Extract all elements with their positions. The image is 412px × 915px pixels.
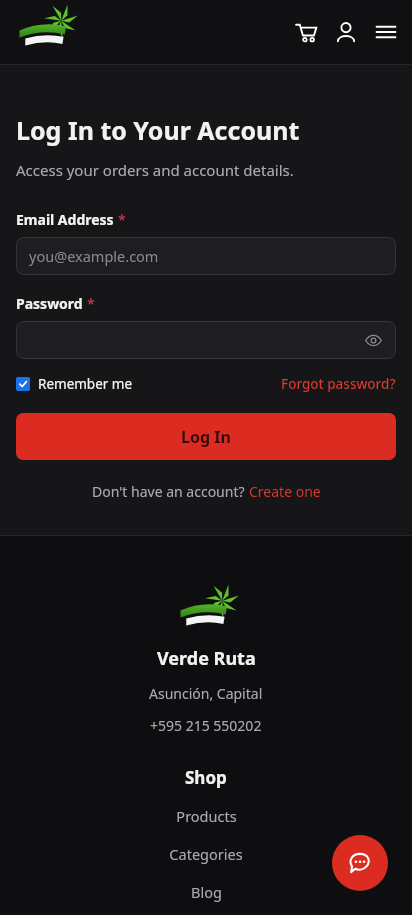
staticText: Don't have an account?	[92, 482, 249, 501]
staticText: Remember me	[38, 375, 133, 393]
staticText: *	[87, 294, 95, 313]
button[interactable]: you@example.com	[16, 237, 396, 275]
staticText: *	[118, 210, 126, 229]
staticText: Access your orders and account details.	[16, 160, 294, 180]
button[interactable]: Verde Ruta	[177, 592, 235, 632]
staticText: Password	[16, 294, 83, 313]
button[interactable]: Forgot password?	[281, 375, 396, 393]
staticText: Shop	[185, 766, 227, 789]
staticText: Forgot password?	[281, 375, 396, 393]
button[interactable]: Remember me	[16, 375, 133, 393]
button[interactable]: Menu	[372, 18, 400, 46]
staticText: Asunción, Capital	[149, 684, 263, 703]
button[interactable]: Account	[332, 18, 360, 46]
staticText: Products	[176, 806, 237, 826]
staticText: Email Address	[16, 210, 114, 229]
button[interactable]: Categories	[0, 844, 412, 864]
staticText: Create one	[249, 482, 321, 501]
button[interactable]: Open chat	[332, 835, 388, 891]
staticText: Log In to Your Account	[16, 113, 300, 147]
staticText: Log In	[181, 426, 231, 448]
staticText: +595 215 550202	[150, 716, 262, 735]
button[interactable]: Log In	[16, 413, 396, 460]
button[interactable]: Verde Ruta home	[16, 12, 74, 52]
button[interactable]: Products	[0, 806, 412, 826]
button[interactable]: Create one	[249, 482, 321, 501]
staticText: Blog	[191, 882, 222, 902]
button[interactable]: Cart	[292, 18, 320, 46]
staticText: Verde Ruta	[157, 646, 256, 671]
button[interactable]: Show password	[360, 327, 386, 353]
button[interactable]: Blog	[0, 882, 412, 902]
staticText: Categories	[169, 844, 243, 864]
staticText: you@example.com	[29, 246, 159, 266]
button[interactable]: Show password	[16, 321, 396, 359]
